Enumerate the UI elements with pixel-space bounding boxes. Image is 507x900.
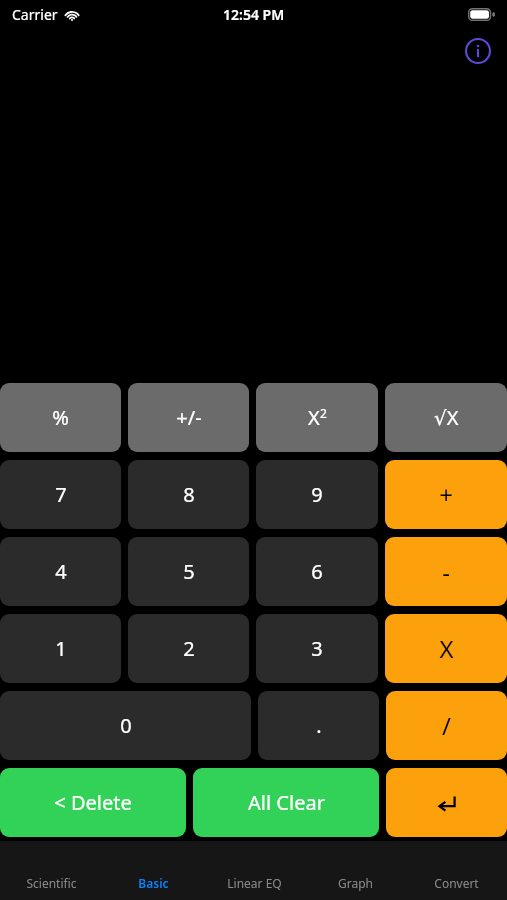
staticText: √X [434, 404, 459, 431]
button[interactable]: X [385, 614, 507, 683]
button[interactable]: Basic [102, 866, 204, 900]
staticText: X [439, 632, 454, 665]
button[interactable]: 2 [128, 614, 249, 683]
button[interactable]: / [386, 691, 507, 760]
button[interactable]: % [0, 383, 121, 452]
staticText: 3 [311, 635, 323, 662]
button[interactable]: 0 [0, 691, 251, 760]
staticText: All Clear [248, 789, 325, 816]
button[interactable]: . [258, 691, 379, 760]
staticText: 5 [183, 558, 195, 585]
staticText: 4 [55, 558, 67, 585]
staticText: Convert [434, 875, 479, 891]
staticText: 7 [55, 481, 67, 508]
button[interactable]: 4 [0, 537, 121, 606]
staticText: 9 [311, 481, 323, 508]
staticText: < Delete [54, 789, 132, 816]
staticText: % [52, 404, 69, 431]
button[interactable]: 7 [0, 460, 121, 529]
button[interactable]: + [385, 460, 507, 529]
staticText: Scientific [26, 875, 77, 891]
staticText: 0 [120, 712, 132, 739]
button[interactable]: 8 [128, 460, 249, 529]
staticText: / [442, 709, 451, 742]
button[interactable]: 5 [128, 537, 249, 606]
staticText: . [316, 712, 322, 739]
button[interactable]: Info [463, 36, 493, 66]
button[interactable]: 9 [256, 460, 378, 529]
button[interactable]: Linear EQ [204, 866, 305, 900]
staticText: +/- [176, 404, 202, 431]
staticText: 6 [311, 558, 323, 585]
staticText: 12:54 PM [223, 5, 285, 24]
button[interactable]: Convert [406, 866, 507, 900]
staticText: Linear EQ [227, 875, 282, 891]
staticText: 8 [183, 481, 195, 508]
staticText: Graph [338, 875, 373, 891]
staticText: 1 [55, 635, 67, 662]
staticText: 2 [183, 635, 195, 662]
staticText: - [442, 555, 450, 588]
button[interactable]: All Clear [193, 768, 379, 837]
button[interactable]: +/- [128, 383, 249, 452]
staticText: X [308, 404, 320, 431]
staticText: Carrier [12, 5, 58, 24]
button[interactable]: < Delete [0, 768, 186, 837]
button[interactable]: - [385, 537, 507, 606]
button[interactable]: 1 [0, 614, 121, 683]
button[interactable]: 3 [256, 614, 378, 683]
staticText: 2 [320, 405, 327, 421]
staticText: Basic [138, 875, 169, 891]
button[interactable]: Scientific [0, 866, 102, 900]
button[interactable]: Enter [386, 768, 507, 837]
staticText: + [439, 478, 453, 511]
button[interactable]: Square root of X [385, 383, 507, 452]
button[interactable]: Graph [305, 866, 406, 900]
button[interactable]: X squared [256, 383, 378, 452]
button[interactable]: 6 [256, 537, 378, 606]
